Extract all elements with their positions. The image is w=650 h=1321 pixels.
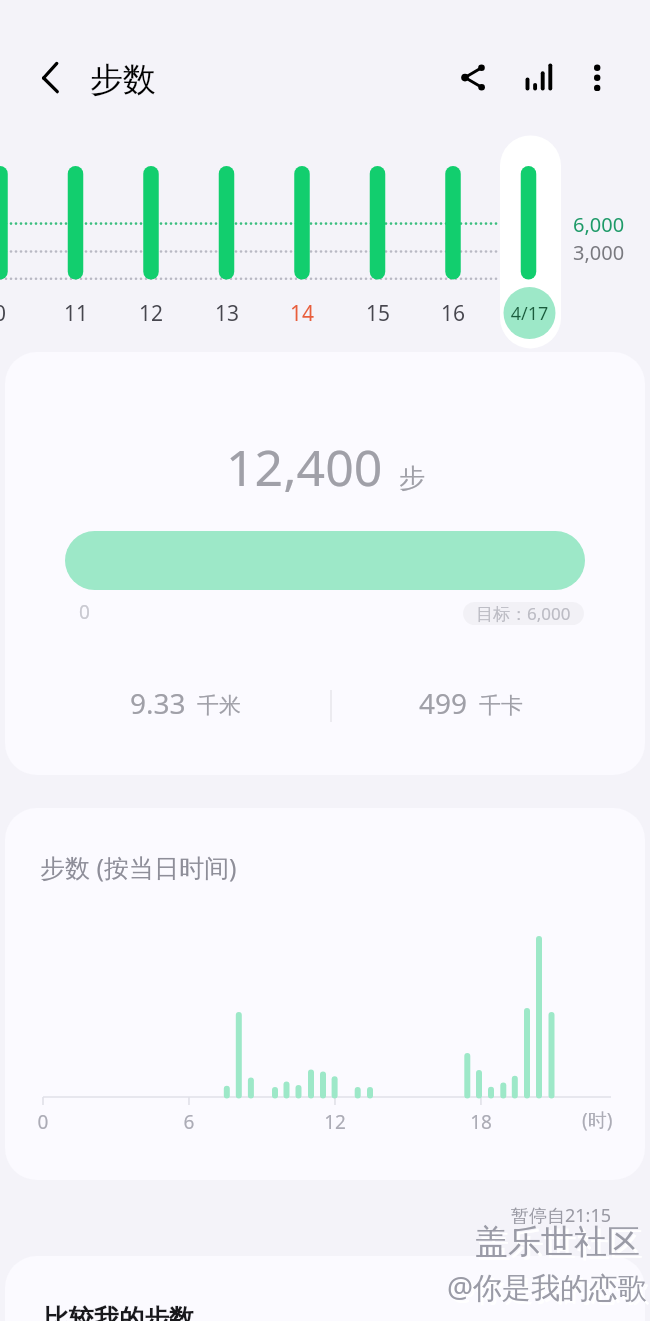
staticText: 暂停自21:15: [511, 1203, 612, 1228]
staticText: 6,000: [573, 211, 625, 238]
button[interactable]: 比较我的步数: [5, 1256, 645, 1321]
staticText: (时): [582, 1107, 613, 1133]
staticText: 16: [428, 299, 478, 328]
staticText: 18: [456, 1109, 506, 1135]
staticText: 千米: [197, 692, 241, 720]
staticText: 0: [0, 299, 25, 328]
staticText: 目标：6,000: [476, 602, 571, 625]
staticText: 3,000: [573, 239, 625, 266]
staticText: 4/17: [499, 301, 560, 326]
staticText: @你是我的恋歌: [447, 1267, 648, 1307]
staticText: 13: [202, 299, 252, 328]
button[interactable]: Share: [449, 56, 497, 104]
staticText: 9.33: [130, 684, 186, 722]
staticText: 12: [126, 299, 176, 328]
staticText: 11: [51, 299, 101, 328]
staticText: 0: [79, 599, 90, 625]
staticText: 15: [353, 299, 403, 328]
button[interactable]: Chart view: [514, 56, 562, 104]
staticText: 盖乐世社区: [478, 1224, 643, 1266]
staticText: 12: [310, 1109, 360, 1135]
button[interactable]: 步数 (按当日时间): [5, 808, 645, 1180]
button[interactable]: Back: [26, 57, 74, 105]
staticText: 步数: [90, 59, 156, 101]
staticText: 步数 (按当日时间): [40, 850, 237, 884]
button[interactable]: 12,400: [5, 352, 645, 775]
staticText: 0: [18, 1109, 68, 1135]
staticText: 盖乐世社区: [475, 1221, 640, 1263]
staticText: 12,400: [226, 433, 383, 501]
staticText: @你是我的恋歌: [450, 1270, 650, 1310]
staticText: 步: [399, 462, 425, 495]
staticText: 千卡: [479, 692, 523, 720]
staticText: 比较我的步数: [44, 1303, 194, 1321]
button[interactable]: More options: [573, 56, 621, 104]
staticText: 14: [277, 299, 327, 328]
staticText: 6: [164, 1109, 214, 1135]
staticText: 499: [419, 684, 468, 722]
